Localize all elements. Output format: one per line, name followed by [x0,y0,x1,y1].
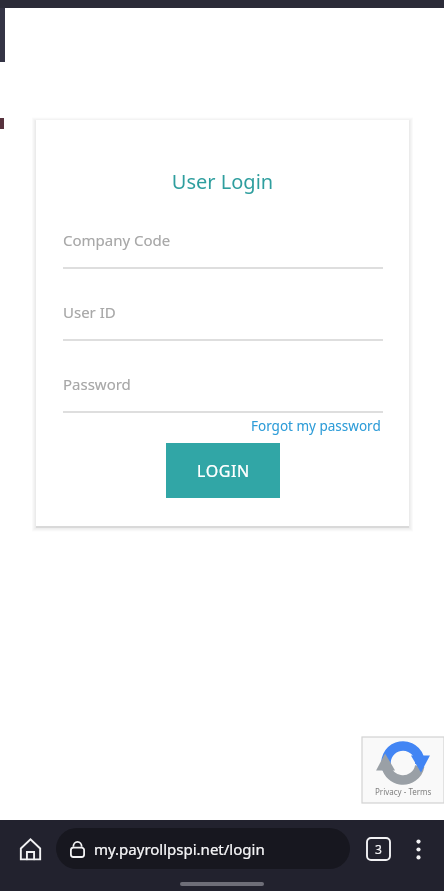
staticText: Privacy - Terms [375,786,432,797]
button[interactable]: More options [400,831,436,867]
button[interactable]: Password [63,373,383,413]
staticText: my.payrollpspi.net/login [94,839,265,859]
staticText: 3 [375,841,382,857]
button[interactable]: LOGIN [166,443,280,498]
staticText: Forgot my password [251,417,381,435]
button[interactable]: User ID [63,301,383,341]
staticText: Company Code [63,230,171,250]
button[interactable]: Home [12,831,48,867]
staticText: User ID [63,302,116,322]
staticText: User Login [36,168,409,195]
staticText: Password [63,374,131,394]
staticText: LOGIN [197,460,250,482]
button[interactable]: reCAPTCHA [362,737,444,803]
button[interactable]: Company Code [63,229,383,269]
button[interactable]: my.payrollpspi.net/login [56,828,350,869]
button[interactable]: Forgot my password [249,414,383,438]
button[interactable]: Tabs, 3 open [360,831,396,867]
